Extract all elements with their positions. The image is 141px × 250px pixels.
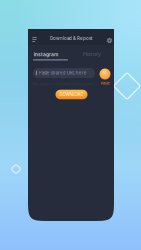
staticText: History	[83, 51, 101, 57]
staticText: Instagram	[34, 51, 58, 57]
button[interactable]: Menu	[29, 34, 40, 45]
staticText: Download & Repost	[50, 36, 92, 41]
button[interactable]: Instagram	[33, 51, 68, 60]
button[interactable]: DOWNLOAD	[55, 90, 87, 99]
button[interactable]: History	[79, 49, 105, 58]
staticText: DOWNLOAD	[59, 92, 83, 97]
staticText: This option is available for Instagram	[32, 82, 92, 86]
staticText: Paste	[100, 81, 109, 85]
staticText: Paste shared URL here	[39, 70, 87, 76]
button[interactable]: Settings	[104, 35, 115, 46]
button[interactable]: Paste	[99, 68, 110, 85]
